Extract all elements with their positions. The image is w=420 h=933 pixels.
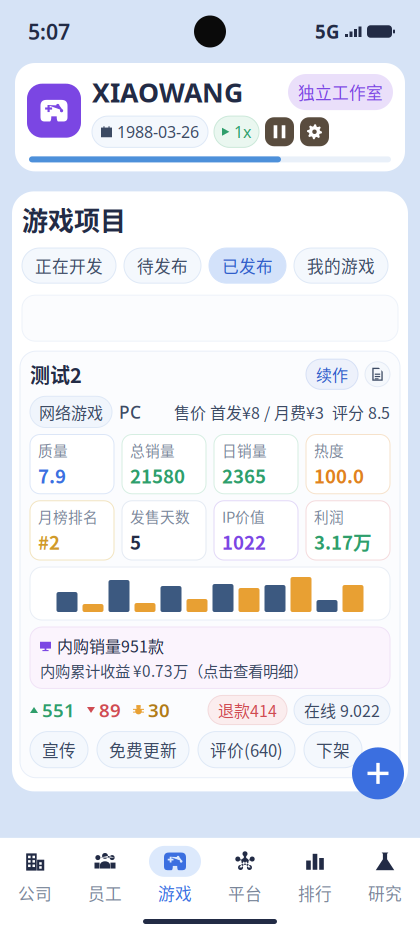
staticText: 总销量 xyxy=(130,439,175,461)
button[interactable]: 内购销量951款 xyxy=(30,627,390,688)
staticText: 续作 xyxy=(316,363,348,386)
staticText: 551 xyxy=(42,698,75,722)
staticText: 我的游戏 xyxy=(307,253,375,278)
staticText: 21580 xyxy=(130,462,185,489)
staticText: 免费更新 xyxy=(109,738,177,762)
button[interactable]: 研究 xyxy=(350,846,420,905)
button[interactable]: 1988-03-26 xyxy=(92,116,208,147)
button[interactable]: 待发布 xyxy=(124,248,201,283)
staticText: 30 xyxy=(148,698,170,722)
staticText: 研究 xyxy=(368,881,402,905)
staticText: 测试2 xyxy=(30,360,82,389)
button[interactable]: 游戏 xyxy=(140,846,210,905)
staticText: 3.17万 xyxy=(314,528,372,555)
staticText: 2365 xyxy=(222,462,266,489)
button[interactable]: Details xyxy=(365,362,390,387)
button[interactable]: 宣传 xyxy=(30,732,88,768)
staticText: 平台 xyxy=(228,881,262,905)
staticText: 宣传 xyxy=(42,738,76,762)
button[interactable]: 1x xyxy=(214,116,259,147)
staticText: 发售天数 xyxy=(130,506,190,527)
staticText: 5 xyxy=(130,528,141,555)
staticText: IP价值 xyxy=(222,506,265,527)
staticText: 下架 xyxy=(316,738,350,762)
button[interactable]: 正在开发 xyxy=(22,248,116,283)
button[interactable]: 员工 xyxy=(70,846,140,905)
staticText: 网络游戏 xyxy=(39,400,103,423)
staticText: 1022 xyxy=(222,528,266,555)
button[interactable]: 平台 xyxy=(210,846,280,905)
staticText: 月榜排名 xyxy=(38,506,98,527)
staticText: 售价 首发¥8 / 月费¥3 评分 8.5 xyxy=(174,400,390,423)
staticText: 已发布 xyxy=(222,253,273,278)
staticText: 5G xyxy=(315,19,340,44)
button[interactable]: 公司 xyxy=(0,846,70,905)
staticText: 89 xyxy=(99,698,121,722)
staticText: 1988-03-26 xyxy=(117,121,199,142)
staticText: 独立工作室 xyxy=(298,80,383,104)
button[interactable]: 我的游戏 xyxy=(294,248,388,283)
staticText: 热度 xyxy=(314,439,344,461)
staticText: 游戏 xyxy=(158,881,192,905)
staticText: 5:07 xyxy=(28,17,70,46)
staticText: #2 xyxy=(38,528,60,555)
button[interactable]: 评价(640) xyxy=(198,732,295,768)
staticText: 员工 xyxy=(88,881,122,905)
staticText: 正在开发 xyxy=(35,253,103,278)
button[interactable]: 下架 xyxy=(304,732,362,768)
staticText: 待发布 xyxy=(137,253,188,278)
staticText: 在线 9.022 xyxy=(304,698,380,722)
staticText: 1x xyxy=(234,121,251,142)
button[interactable]: Pause xyxy=(265,117,294,146)
staticText: 评价(640) xyxy=(210,738,283,762)
staticText: 7.9 xyxy=(38,462,66,489)
staticText: 质量 xyxy=(38,439,68,461)
staticText: 100.0 xyxy=(314,462,364,489)
staticText: 内购销量951款 xyxy=(57,634,164,657)
button[interactable]: 续作 xyxy=(306,359,358,389)
button[interactable]: 排行 xyxy=(280,846,350,905)
staticText: XIAOWANG xyxy=(92,74,243,110)
staticText: 内购累计收益 ¥0.73万（点击查看明细） xyxy=(40,659,308,681)
staticText: 退款414 xyxy=(218,698,277,722)
staticText: PC xyxy=(119,400,141,423)
staticText: 利润 xyxy=(314,506,344,527)
button[interactable]: Add game xyxy=(356,739,408,791)
button[interactable]: 已发布 xyxy=(209,248,286,283)
staticText: 公司 xyxy=(18,881,52,905)
staticText: 日销量 xyxy=(222,439,267,461)
button[interactable]: Settings xyxy=(300,117,329,146)
button[interactable]: 免费更新 xyxy=(97,732,189,768)
staticText: 排行 xyxy=(298,881,332,905)
staticText: 游戏项目 xyxy=(22,200,126,238)
